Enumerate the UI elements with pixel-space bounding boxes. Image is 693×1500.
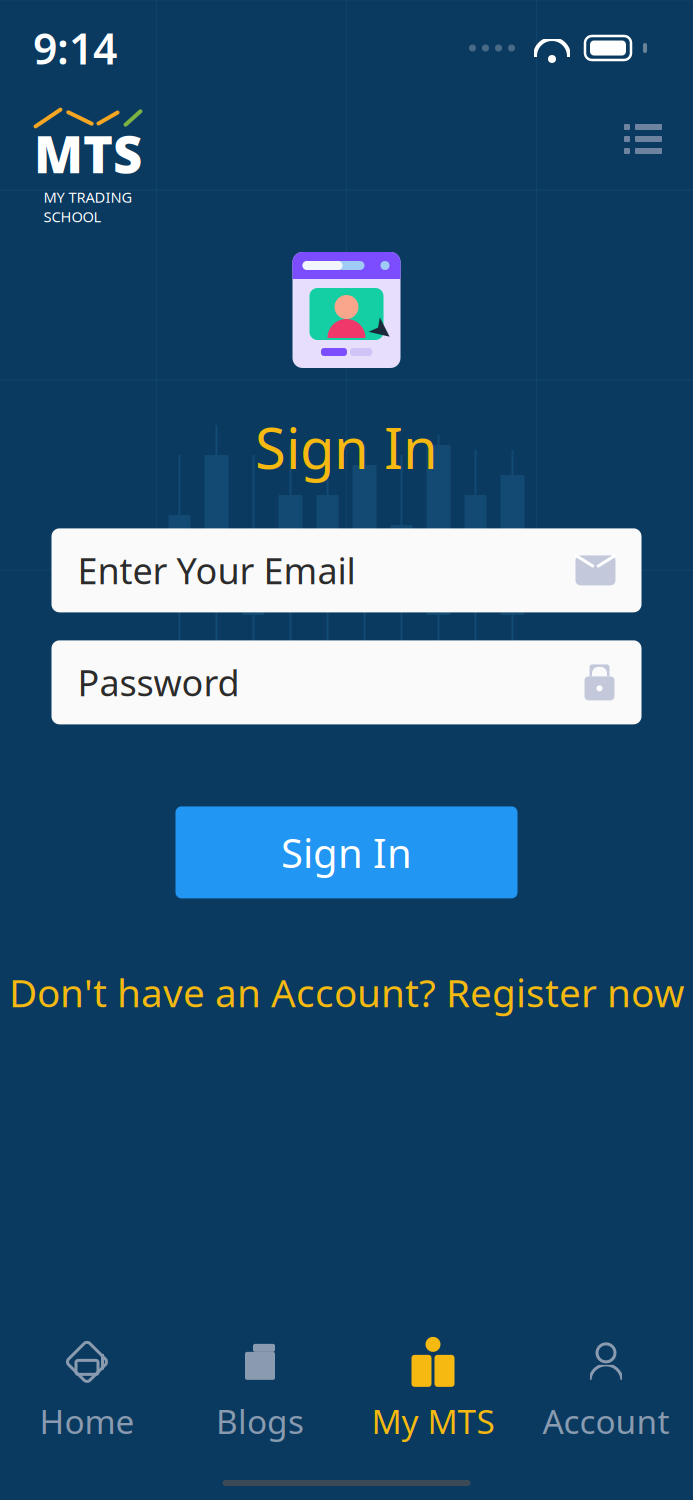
staticText: Account bbox=[542, 1399, 669, 1443]
staticText: ➤ bbox=[369, 313, 394, 346]
button[interactable]: Home bbox=[0, 1324, 173, 1454]
button[interactable]: Menu bbox=[623, 124, 663, 154]
staticText: Don't have an Account? Register now bbox=[9, 967, 684, 1018]
button[interactable]: Don't have an Account? Register now bbox=[9, 970, 684, 1014]
staticText: Blogs bbox=[216, 1399, 304, 1443]
button[interactable]: Account bbox=[519, 1324, 692, 1454]
button[interactable]: Enter Your Email bbox=[51, 528, 641, 612]
staticText: MY TRADING SCHOOL bbox=[43, 187, 132, 226]
staticText: MTS bbox=[34, 120, 142, 187]
button[interactable]: Password bbox=[51, 640, 641, 724]
staticText: 9:14 bbox=[33, 20, 117, 76]
button[interactable]: My MTS bbox=[346, 1324, 519, 1454]
staticText: Enter Your Email bbox=[77, 546, 355, 594]
staticText: My MTS bbox=[371, 1399, 494, 1443]
staticText: Sign In bbox=[255, 410, 438, 484]
button[interactable]: Sign In bbox=[175, 806, 517, 898]
button[interactable]: My Trading School home bbox=[32, 108, 144, 170]
staticText: Sign In bbox=[281, 826, 412, 879]
button[interactable]: Blogs bbox=[173, 1324, 346, 1454]
staticText: Password bbox=[77, 658, 239, 706]
staticText: Home bbox=[39, 1399, 134, 1443]
